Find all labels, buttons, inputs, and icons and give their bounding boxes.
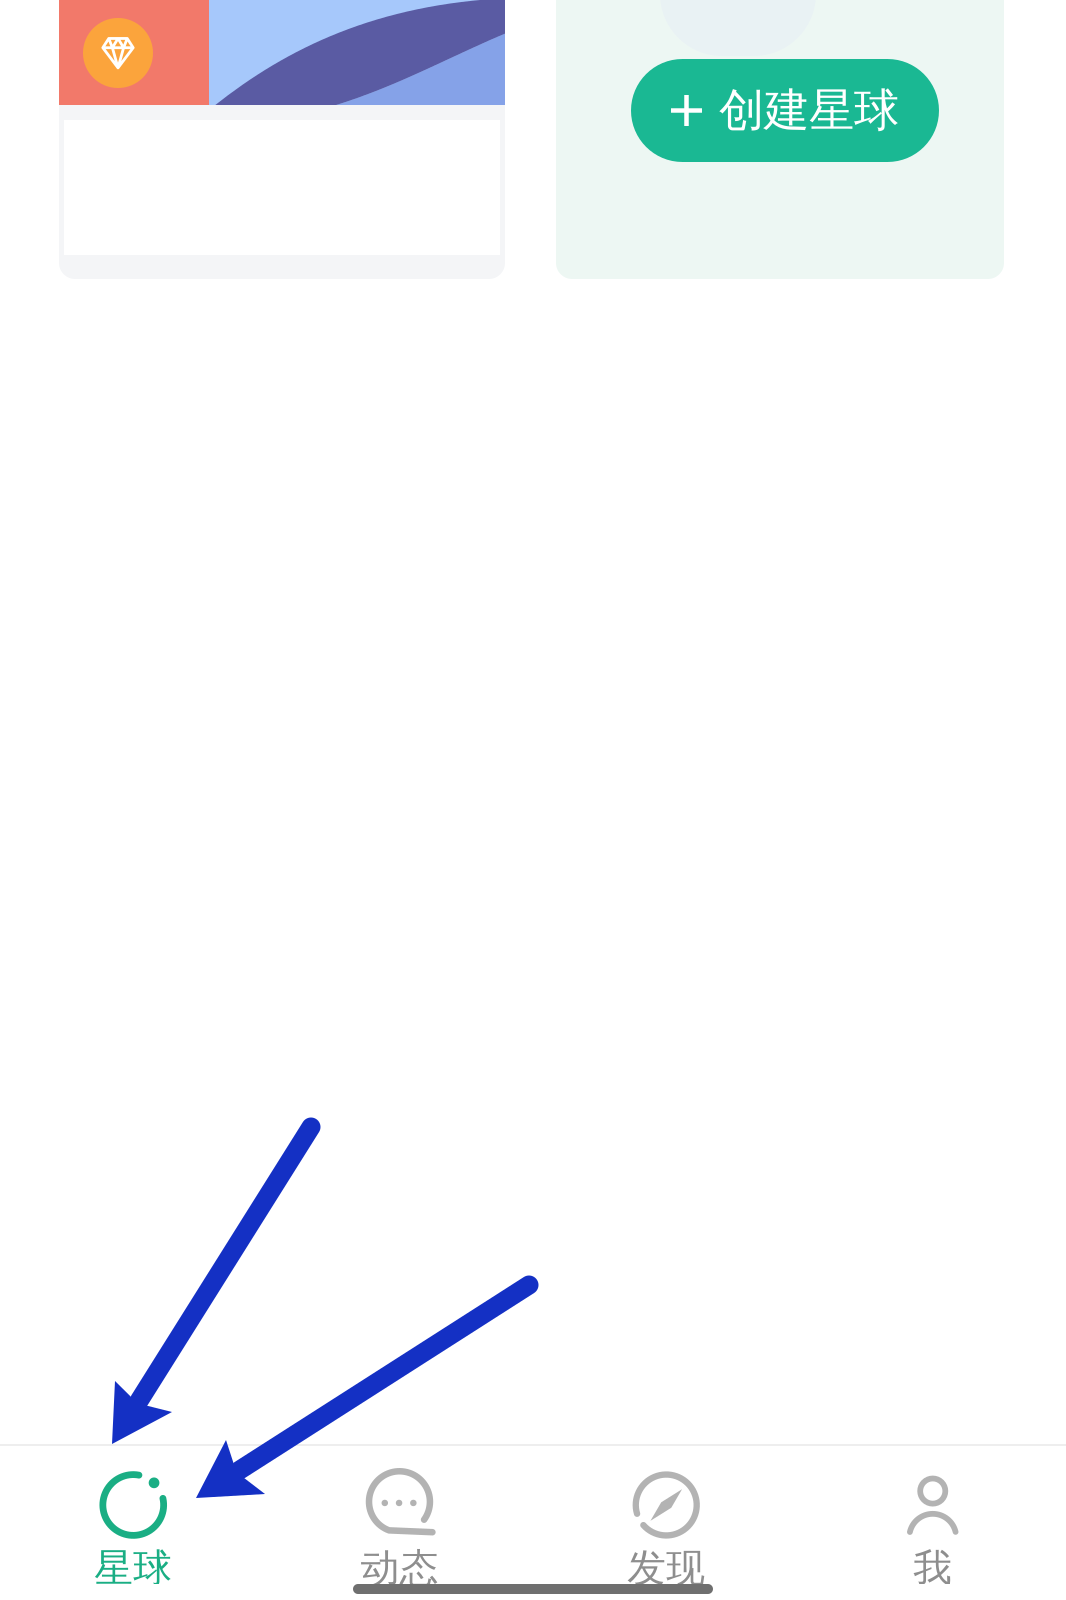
button[interactable]: 动态 [266,1446,533,1584]
staticText: 动态 [361,1544,439,1592]
staticText: 我 [913,1544,952,1592]
staticText: 发现 [627,1544,705,1592]
button[interactable]: 星球 [0,1446,266,1584]
staticText: 创建星球 [719,83,899,138]
button[interactable]: 我 [799,1446,1066,1584]
button[interactable]: 创建星球 [631,59,939,162]
staticText: 星球 [94,1544,172,1592]
button[interactable]: 发现 [533,1446,799,1584]
